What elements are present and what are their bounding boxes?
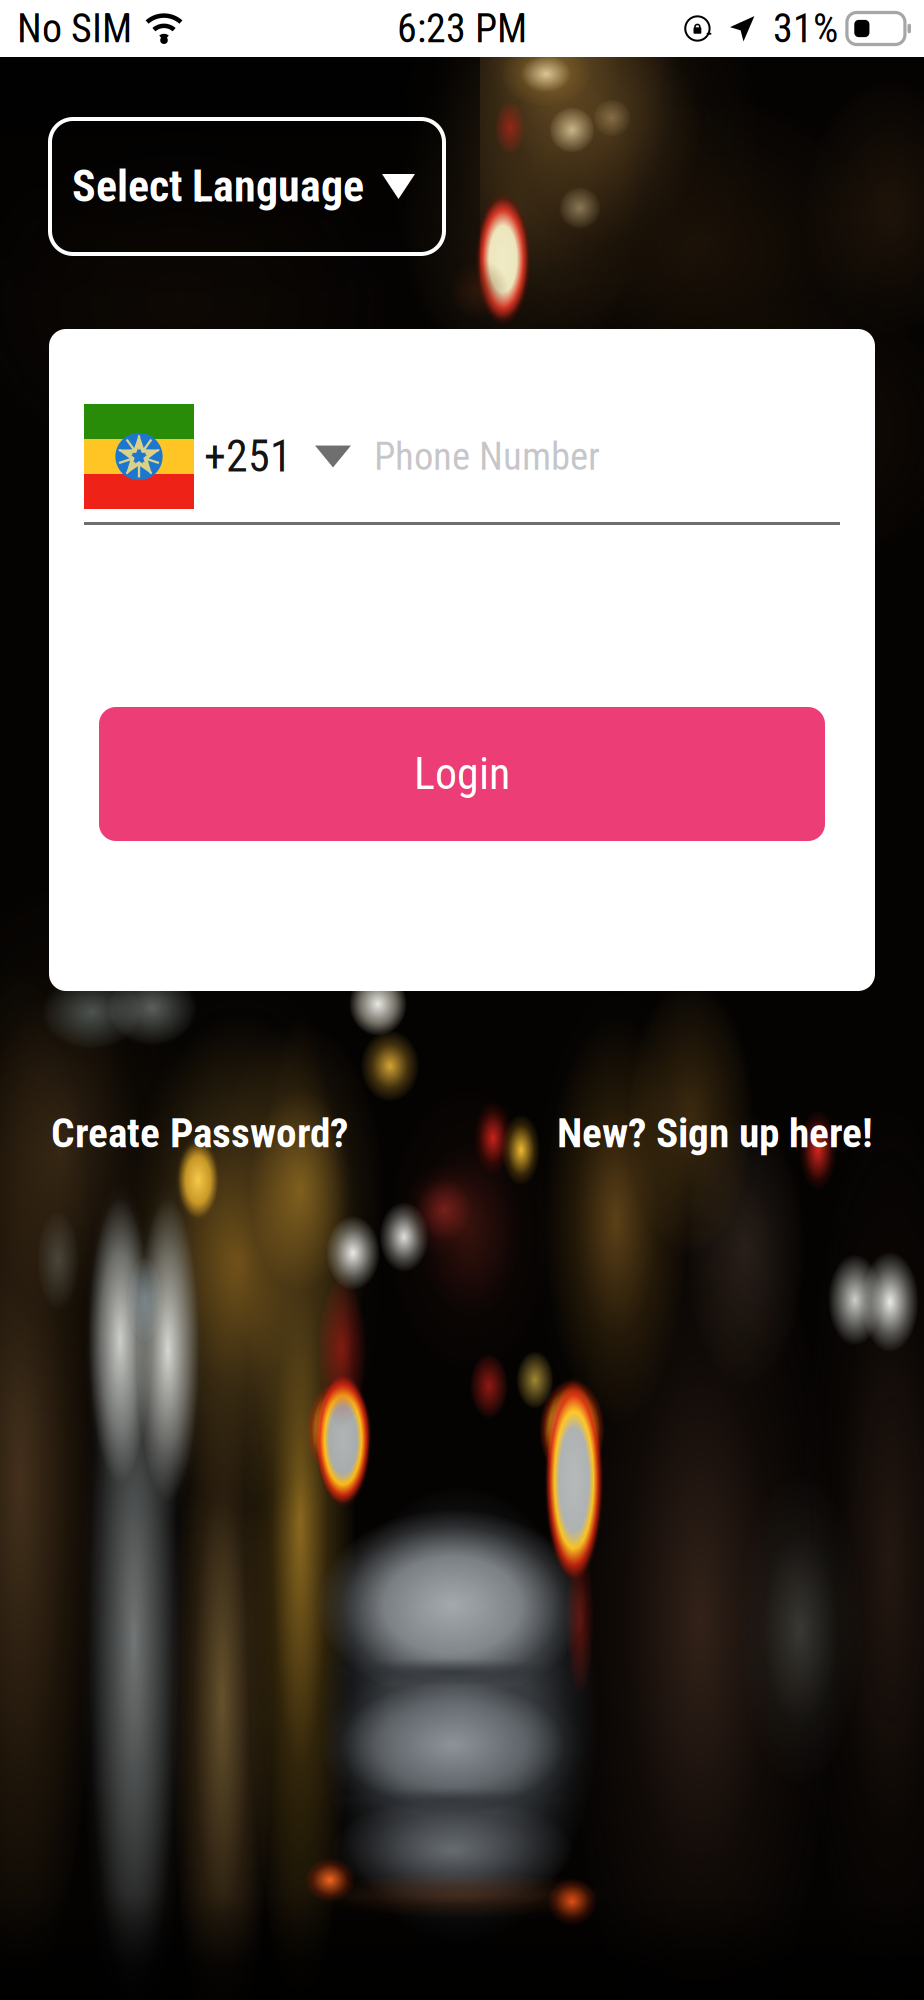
button[interactable]: New? Sign up here! xyxy=(557,1109,873,1157)
staticText: 6:23 PM xyxy=(397,5,527,52)
staticText: Login xyxy=(414,748,510,800)
button[interactable]: Select Language xyxy=(50,119,444,254)
staticText: Phone Number xyxy=(374,434,600,479)
staticText: Create Password? xyxy=(51,1109,348,1157)
staticText: Select Language xyxy=(72,161,364,212)
button[interactable]: Login xyxy=(99,707,825,841)
staticText: New? Sign up here! xyxy=(557,1109,873,1157)
button[interactable]: Create Password? xyxy=(51,1109,348,1157)
staticText: 31% xyxy=(773,5,838,52)
staticText: +251 xyxy=(204,431,292,482)
staticText: No SIM xyxy=(17,5,132,52)
